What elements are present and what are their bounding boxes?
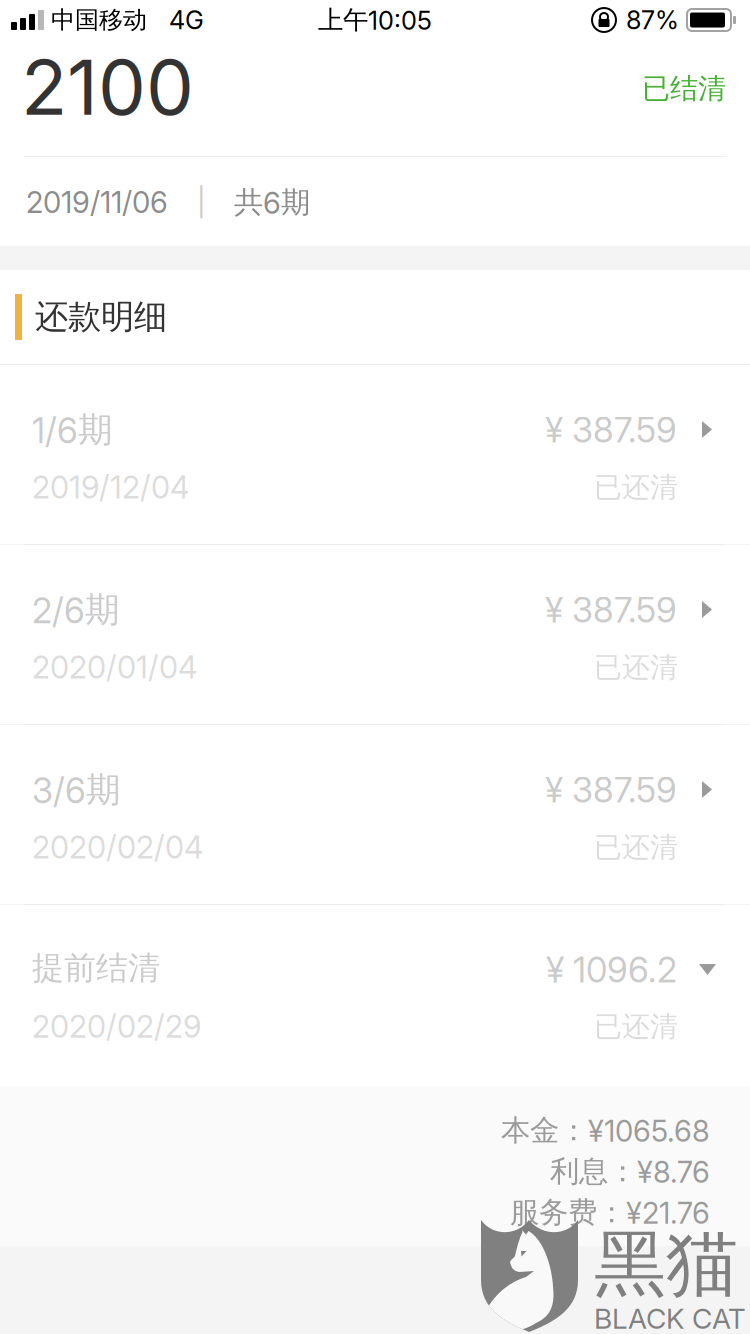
staticText: 已还清 — [594, 650, 678, 685]
button[interactable]: 1/6期 — [0, 365, 750, 544]
staticText: 本金：¥1065.68 — [501, 1112, 710, 1149]
staticText: ¥ 387.59 — [545, 769, 677, 811]
staticText: 已还清 — [594, 1009, 678, 1044]
staticText: 1/6期 — [32, 408, 113, 452]
button[interactable]: 2/6期 — [0, 545, 750, 724]
staticText: 3/6期 — [32, 768, 121, 812]
staticText: ¥ 387.59 — [545, 409, 677, 451]
staticText: 已结清 — [642, 71, 726, 106]
staticText: 4G — [169, 5, 204, 35]
staticText: 上午10:05 — [318, 4, 432, 36]
staticText: 服务费：¥21.76 — [510, 1194, 710, 1231]
staticText: ¥ 1096.2 — [546, 949, 677, 991]
staticText: 2020/02/04 — [32, 829, 203, 866]
staticText: 已还清 — [594, 470, 678, 505]
staticText: ¥ 387.59 — [545, 589, 677, 631]
staticText: BLACK CAT — [594, 1302, 746, 1334]
button[interactable]: 提前结清 — [0, 905, 750, 1086]
staticText: 2100 — [21, 41, 194, 133]
staticText: 2020/01/04 — [32, 649, 197, 686]
staticText: 中国移动 — [51, 5, 147, 35]
staticText: 提前结清 — [32, 948, 160, 988]
staticText: 还款明细 — [35, 296, 167, 338]
staticText: 共6期 — [234, 184, 310, 221]
staticText: 2019/11/06 — [26, 185, 168, 220]
staticText: 2/6期 — [32, 588, 120, 632]
button[interactable]: 3/6期 — [0, 725, 750, 904]
staticText: | — [197, 186, 206, 219]
staticText: 利息：¥8.76 — [550, 1153, 710, 1190]
staticText: 2019/12/04 — [32, 469, 189, 506]
staticText: 已还清 — [594, 830, 678, 865]
staticText: 黑猫 — [594, 1219, 738, 1310]
staticText: 2020/02/29 — [32, 1008, 201, 1045]
staticText: 87% — [626, 5, 679, 35]
